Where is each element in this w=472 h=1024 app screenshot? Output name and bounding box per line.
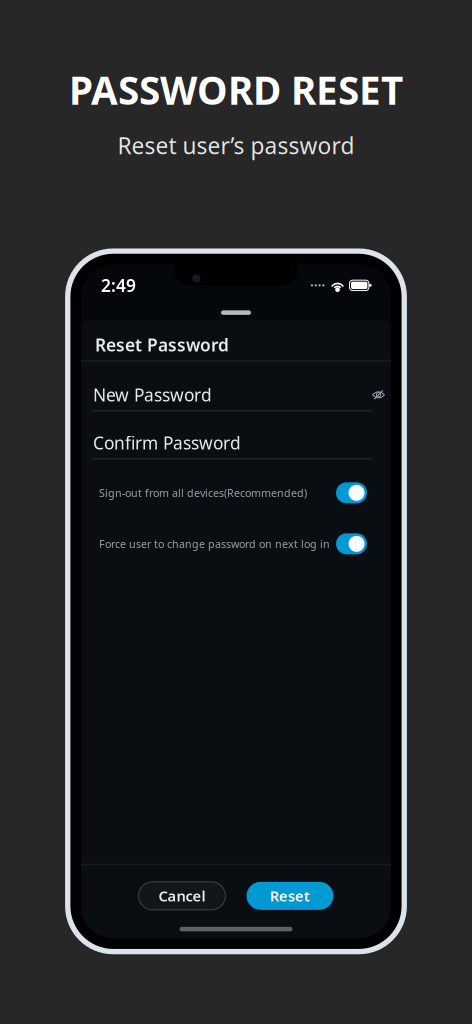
staticText: Reset bbox=[270, 886, 310, 906]
staticText: Reset Password bbox=[95, 333, 229, 356]
staticText: New Password bbox=[93, 383, 212, 406]
staticText: Cancel bbox=[158, 886, 205, 906]
staticText: Confirm Password bbox=[93, 431, 241, 454]
button[interactable]: Force user to change password on next lo… bbox=[81, 533, 391, 554]
button[interactable]: New Password bbox=[81, 384, 391, 405]
button[interactable]: Sign-out from all devices(Recommended) bbox=[81, 482, 391, 503]
staticText: PASSWORD RESET bbox=[69, 64, 403, 115]
staticText: Reset user’s password bbox=[117, 130, 354, 160]
button[interactable]: Cancel bbox=[138, 882, 225, 910]
staticText: 2:49 bbox=[101, 274, 136, 297]
button[interactable]: Reset bbox=[246, 882, 333, 910]
button[interactable]: Confirm Password bbox=[81, 432, 391, 453]
staticText: Sign-out from all devices(Recommended) bbox=[99, 486, 307, 500]
staticText: Force user to change password on next lo… bbox=[99, 537, 330, 551]
